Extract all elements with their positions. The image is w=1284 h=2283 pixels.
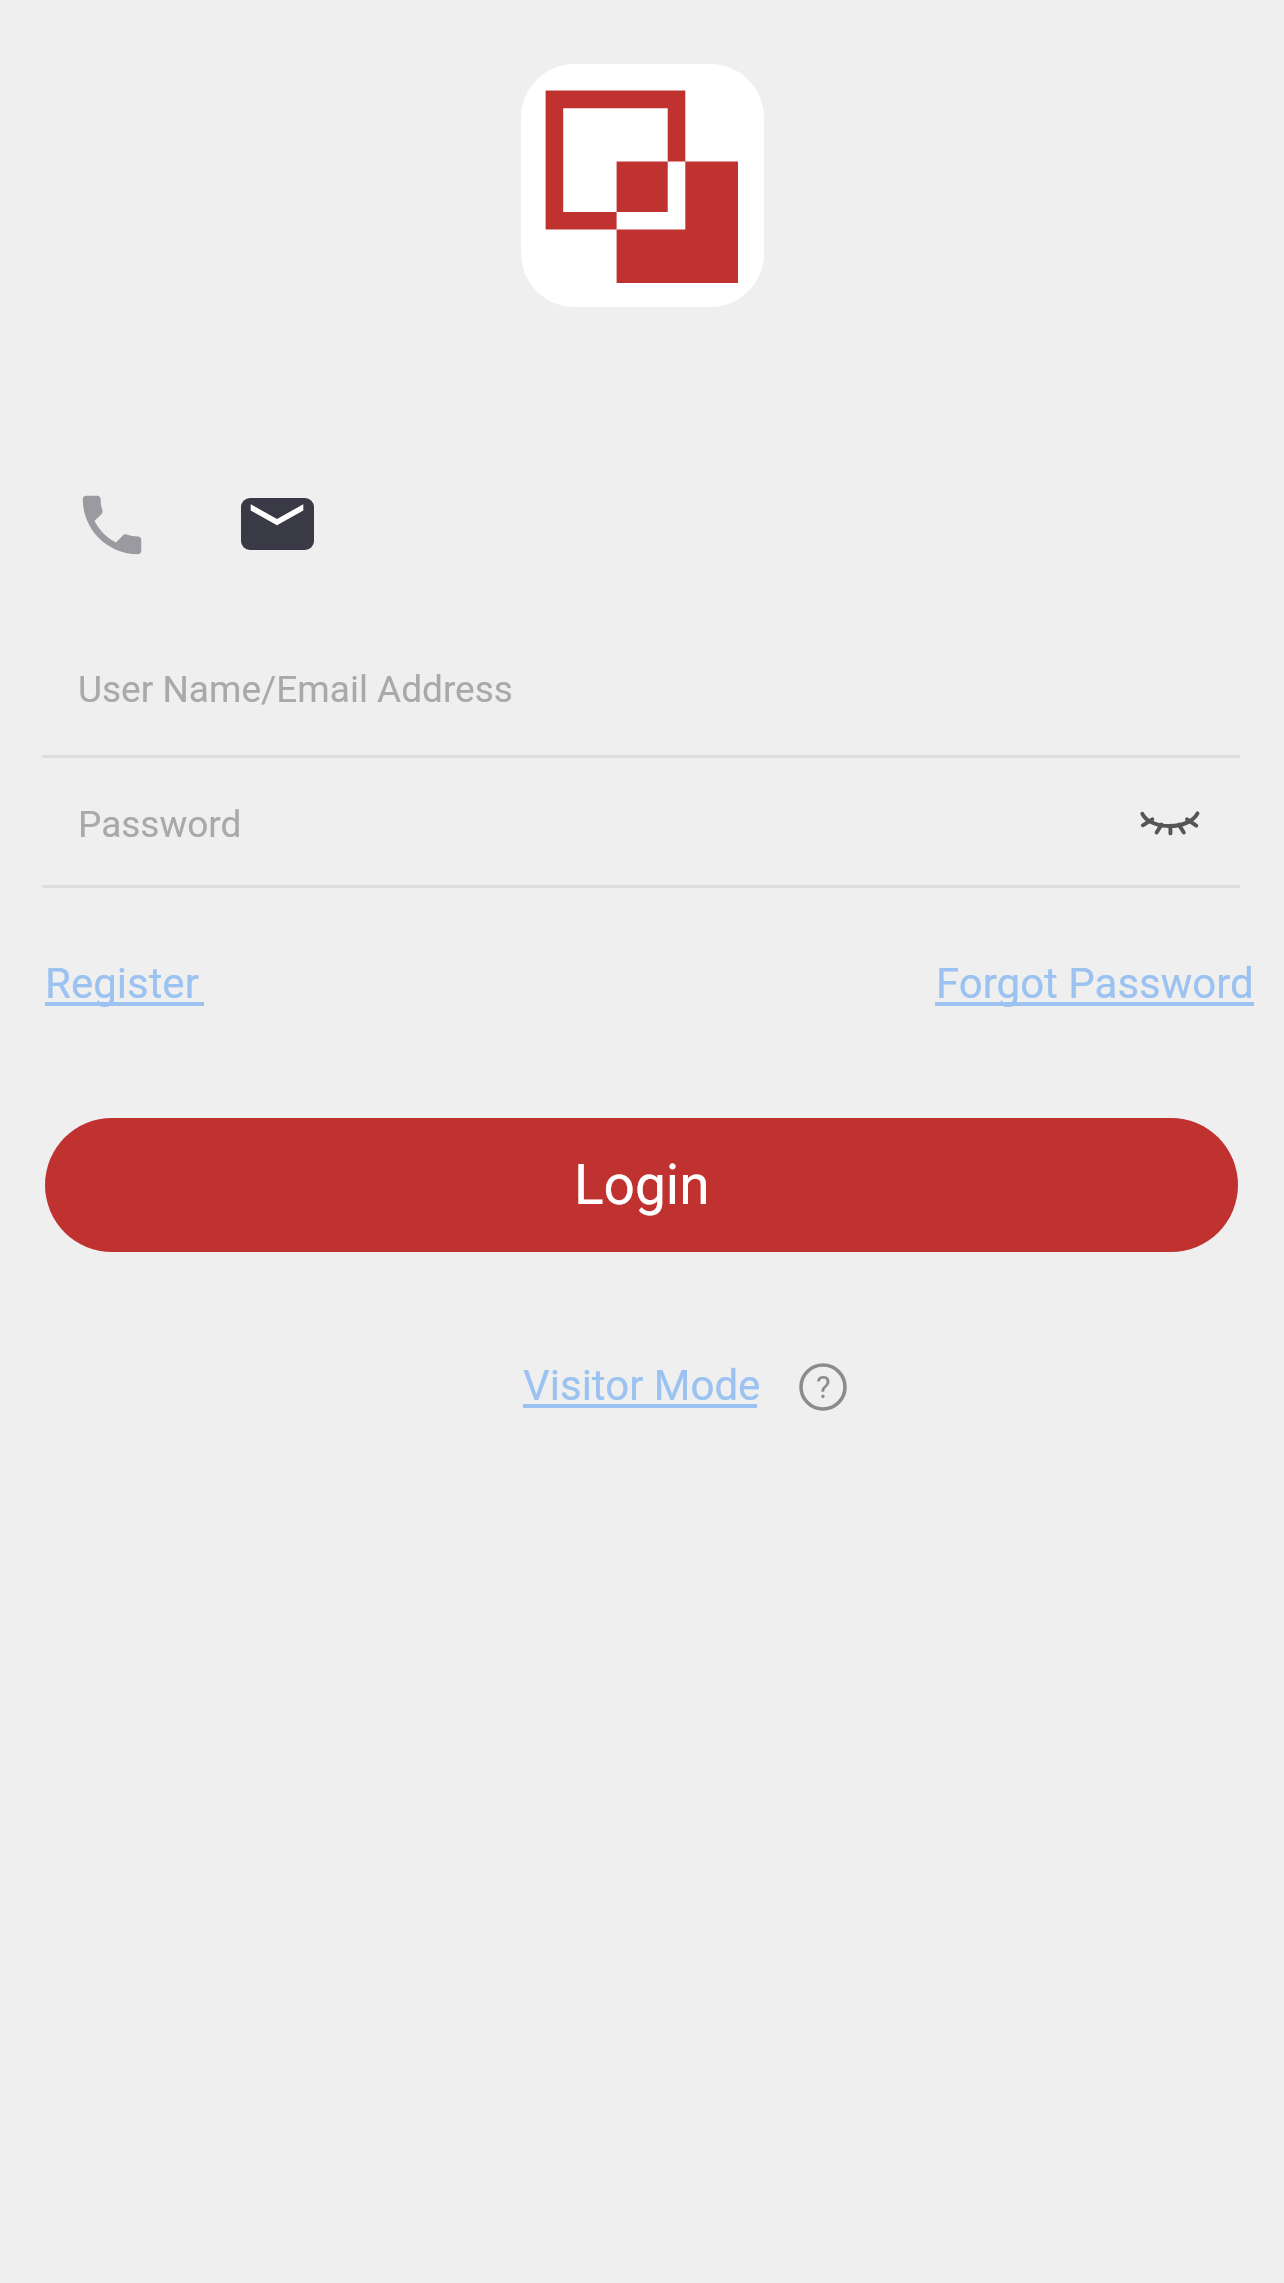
button[interactable]: Password: [42, 760, 1240, 888]
button[interactable]: Login: [45, 1118, 1238, 1252]
staticText: Forgot Password: [936, 959, 1254, 1008]
button[interactable]: Visitor Mode: [523, 1361, 761, 1410]
button[interactable]: Sign in with phone number: [73, 486, 151, 564]
staticText: User Name/Email Address: [78, 668, 513, 711]
button[interactable]: Visitor mode help: [799, 1363, 847, 1411]
button[interactable]: Show password: [1119, 773, 1215, 869]
staticText: ?: [816, 1369, 831, 1405]
button[interactable]: Sign in with email: [235, 488, 319, 572]
staticText: Password: [78, 803, 242, 846]
staticText: Login: [574, 1153, 710, 1217]
button[interactable]: User Name/Email Address: [42, 632, 1240, 746]
button[interactable]: Register: [45, 959, 199, 1008]
staticText: Register: [45, 959, 199, 1008]
button[interactable]: Forgot Password: [936, 959, 1254, 1008]
staticText: Visitor Mode: [523, 1361, 761, 1410]
